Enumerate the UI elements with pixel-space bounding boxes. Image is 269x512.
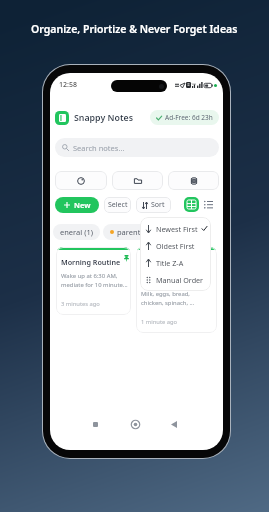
staticText: 3 minutes ago: [61, 300, 100, 308]
staticText: 1 minute ago: [141, 318, 178, 326]
staticText: New: [74, 200, 91, 210]
staticText: Wake up at 6:30 AM, mediate for 10 minut…: [61, 272, 128, 289]
staticText: Morning Routine: [61, 257, 121, 267]
staticText: Grocery List: [141, 275, 183, 285]
staticText: Sort: [151, 200, 165, 210]
button[interactable]: Title Z-A: [140, 254, 211, 271]
button[interactable]: Sort: [136, 197, 171, 213]
button[interactable]: Back: [165, 415, 183, 433]
staticText: Select: [108, 200, 128, 210]
button[interactable]: Newest First: [140, 220, 211, 237]
button[interactable]: Backup: [168, 171, 219, 190]
button[interactable]: Manual Order: [140, 271, 211, 288]
staticText: Title Z-A: [156, 258, 184, 268]
staticText: Organize, Priortize & Never Forget Ideas: [31, 22, 238, 36]
button[interactable]: Search notes...: [55, 138, 219, 157]
staticText: 12:58: [59, 80, 77, 90]
staticText: parent c: [117, 227, 146, 237]
button[interactable]: parent c: [103, 224, 153, 240]
button[interactable]: Ad-Free: 6d 23h: [150, 110, 219, 125]
button[interactable]: List view: [202, 198, 215, 211]
button[interactable]: Oldest First: [140, 237, 211, 254]
button[interactable]: Home: [126, 415, 144, 433]
button[interactable]: Folders: [112, 171, 163, 190]
button[interactable]: Morning Routine: [56, 247, 131, 315]
button[interactable]: Recents: [86, 415, 104, 433]
staticText: Snappy Notes: [74, 112, 134, 124]
staticText: Milk, eggs, bread, chicken, spinach, ...: [141, 290, 195, 307]
staticText: Ad-Free: 6d 23h: [165, 113, 213, 122]
button[interactable]: Select: [104, 197, 131, 213]
button[interactable]: Grid view: [184, 197, 199, 212]
staticText: Oldest First: [156, 241, 195, 251]
button[interactable]: eneral (1): [53, 224, 100, 240]
button[interactable]: Theme: [55, 171, 107, 190]
staticText: Newest First: [156, 224, 198, 234]
button[interactable]: Grocery List: [136, 247, 217, 333]
staticText: eneral (1): [60, 227, 93, 237]
button[interactable]: New: [55, 197, 99, 213]
staticText: Manual Order: [156, 275, 204, 285]
staticText: Search notes...: [73, 143, 125, 153]
